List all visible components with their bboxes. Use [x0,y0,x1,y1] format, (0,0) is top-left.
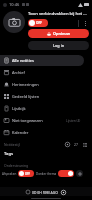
staticText: Donker thema [36,172,57,176]
button[interactable]: Log in [28,41,89,50]
staticText: Tags [4,151,14,157]
staticText: Kalender [12,130,29,135]
staticText: Gedeeld lijsten [12,94,40,99]
staticText: Alle notities [12,58,34,63]
staticText: Lijsten (4) [66,119,81,123]
button[interactable]: Account avatar [3,11,25,33]
button[interactable]: OFF [28,19,48,27]
button[interactable]: Add [76,170,83,177]
button[interactable]: Grid settings [64,141,71,148]
staticText: Herinneringen [12,82,39,87]
button[interactable]: OFF [18,170,34,177]
staticText: Afspraken [2,172,17,176]
staticText: 27 [74,142,78,147]
staticText: Opnieuw [53,31,70,36]
staticText: Log in [53,43,65,48]
staticText: OFF [36,21,43,25]
staticText: ON [69,172,74,176]
button[interactable]: More options [82,20,89,27]
staticText: Niet toegewezen [12,118,43,123]
button[interactable]: Sync [60,189,66,195]
button[interactable]: Opnieuw [28,29,89,38]
staticText: Ondersteuning [4,163,29,168]
staticText: 10:46 [9,2,20,7]
button[interactable]: List layout [81,141,88,148]
button[interactable]: Niet toegewezen [0,115,84,126]
button[interactable]: Gedeeld lijsten [0,91,84,102]
staticText: Lijstkijk [12,106,26,111]
button[interactable]: Herinneringen [0,79,84,90]
staticText: Notitiestijl [4,142,21,147]
button[interactable]: Kalender [0,127,84,138]
staticText: OFF [25,172,30,176]
staticText: 0D 0H 59M AGO [32,190,58,195]
button[interactable]: Archief [0,67,84,78]
button[interactable]: Alle notities [0,55,84,66]
button[interactable]: Lijstkijk [0,103,84,114]
button[interactable]: ON [58,170,74,177]
staticText: Archief [12,70,25,75]
staticText: Toon verbindvakken bij het opstarten [28,11,89,17]
